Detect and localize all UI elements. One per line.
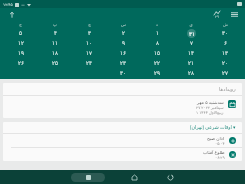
button[interactable]: ۱۲ [3, 38, 38, 48]
button[interactable]: ۲ [106, 28, 140, 38]
button[interactable]: ۲۷ [208, 68, 242, 78]
staticText: ۲۶ [18, 60, 24, 66]
staticText: پ [53, 22, 57, 27]
staticText: ۱۳ [222, 50, 228, 56]
button[interactable]: ۵ [3, 28, 38, 38]
staticText: ۱۰ [86, 40, 92, 46]
staticText: ۶ [224, 40, 227, 46]
staticText: ۲۰ [222, 60, 228, 66]
button[interactable]: ۱۱ [38, 38, 72, 48]
button[interactable]: ۲۳ [106, 58, 140, 68]
staticText: ش [223, 22, 228, 27]
button[interactable]: ۳۰ [208, 28, 242, 38]
staticText: ۲۲ [154, 60, 160, 66]
button[interactable]: ۲۵ [38, 58, 72, 68]
button[interactable]: رویدادها [3, 83, 242, 118]
button[interactable]: ۷ [174, 38, 208, 48]
staticText: ۴ [54, 30, 57, 36]
staticText: ۲ [122, 30, 125, 36]
button[interactable]: Home [128, 171, 140, 183]
staticText: ۳۰ [120, 70, 126, 76]
staticText: ۲۵ [52, 60, 58, 66]
staticText: اوقات شرعی (تهران) ▾ [190, 124, 236, 131]
other: Date [228, 100, 236, 108]
button[interactable]: ۱ [140, 28, 174, 38]
staticText: ۲۱ [188, 60, 194, 66]
staticText: ۳ [88, 30, 91, 36]
button[interactable]: Back [164, 171, 176, 183]
staticText: ۱۹ [18, 50, 24, 56]
staticText: ۹ [122, 40, 125, 46]
staticText: د [156, 22, 158, 27]
staticText: ۱۲:۴۵ [3, 2, 13, 7]
staticText: ۲۳ [120, 60, 126, 66]
staticText: ۱۸ [52, 50, 58, 56]
button[interactable]: ۸ [140, 38, 174, 48]
button[interactable]: ۱۹ [3, 48, 38, 58]
staticText: اذان صبح [207, 135, 225, 141]
button[interactable]: ۱۶ [106, 48, 140, 58]
button[interactable]: ۱۸ [38, 48, 72, 58]
button[interactable]: ۴ [38, 28, 72, 38]
button[interactable]: اوقات شرعی (تهران) ▾ [9, 122, 236, 133]
button[interactable]: ۱۴ [174, 48, 208, 58]
staticText: ۲۸ [188, 70, 194, 76]
button[interactable]: Recents [71, 173, 105, 182]
button[interactable]: طلوع آفتاب [9, 148, 236, 161]
button[interactable]: اذان صبح [9, 134, 236, 147]
staticText: ۳۰ [222, 30, 228, 36]
button[interactable]: ۲۶ [3, 58, 38, 68]
button[interactable]: ۱۷ [72, 48, 106, 58]
button[interactable]: ۱۵ [140, 48, 174, 58]
staticText: ۲۹ [215, 15, 219, 19]
button[interactable]: ۲۱ [174, 58, 208, 68]
other: Sunrise [229, 151, 236, 158]
staticText: طلوع آفتاب [203, 149, 225, 155]
staticText: ۲۷ [222, 70, 228, 76]
button[interactable]: ۲۲ [140, 58, 174, 68]
button[interactable]: Moon phase [210, 8, 223, 21]
button[interactable]: ۲۴ [72, 58, 106, 68]
staticText: ۱۷ [86, 50, 92, 56]
staticText: ج [19, 22, 22, 27]
staticText: ۲۹ [154, 70, 160, 76]
button[interactable]: ۱۳ [208, 48, 242, 58]
button[interactable]: ۲۹ [140, 68, 174, 78]
button[interactable]: ۱۰ [72, 38, 106, 48]
staticText: ۱۴ [188, 50, 194, 56]
staticText: ۱ [156, 30, 159, 36]
other: Dawn [229, 137, 236, 144]
staticText: ۳۱ [189, 31, 195, 37]
staticText: ۷ [190, 40, 193, 46]
staticText: سه‌شنبه ۵ مهر [197, 99, 224, 105]
staticText: س [121, 22, 126, 27]
button[interactable]: ۳۱ [174, 28, 208, 38]
staticText: ۸ [156, 40, 159, 46]
staticText: ۱۶ [120, 50, 126, 56]
button[interactable]: ۲۰ [208, 58, 242, 68]
staticText: ۱۵ [154, 50, 160, 56]
button[interactable]: ۹ [106, 38, 140, 48]
staticText: رویدادها [219, 86, 236, 92]
staticText: ۰۵:۰۴ [215, 141, 225, 146]
button[interactable]: Today [6, 9, 17, 20]
staticText: ۲۷ سپتامبر ۲۰۲۲ [196, 105, 224, 110]
staticText: ۲۴ [86, 60, 92, 66]
staticText: ۰۶:۲۹ [215, 155, 225, 160]
staticText: ۱۲ [18, 40, 24, 46]
button[interactable]: ۲۸ [174, 68, 208, 78]
button[interactable]: ۳۰ [106, 68, 140, 78]
staticText: ۱۱ [52, 40, 58, 46]
button[interactable]: ۶ [208, 38, 242, 48]
staticText: ۱ ربیع‌الاول ۱۴۴۴ [196, 110, 224, 115]
staticText: ی [189, 22, 193, 27]
staticText: چ [88, 22, 91, 27]
staticText: ۵ [19, 30, 22, 36]
button[interactable]: Menu [228, 8, 241, 21]
button[interactable]: ۳ [72, 28, 106, 38]
